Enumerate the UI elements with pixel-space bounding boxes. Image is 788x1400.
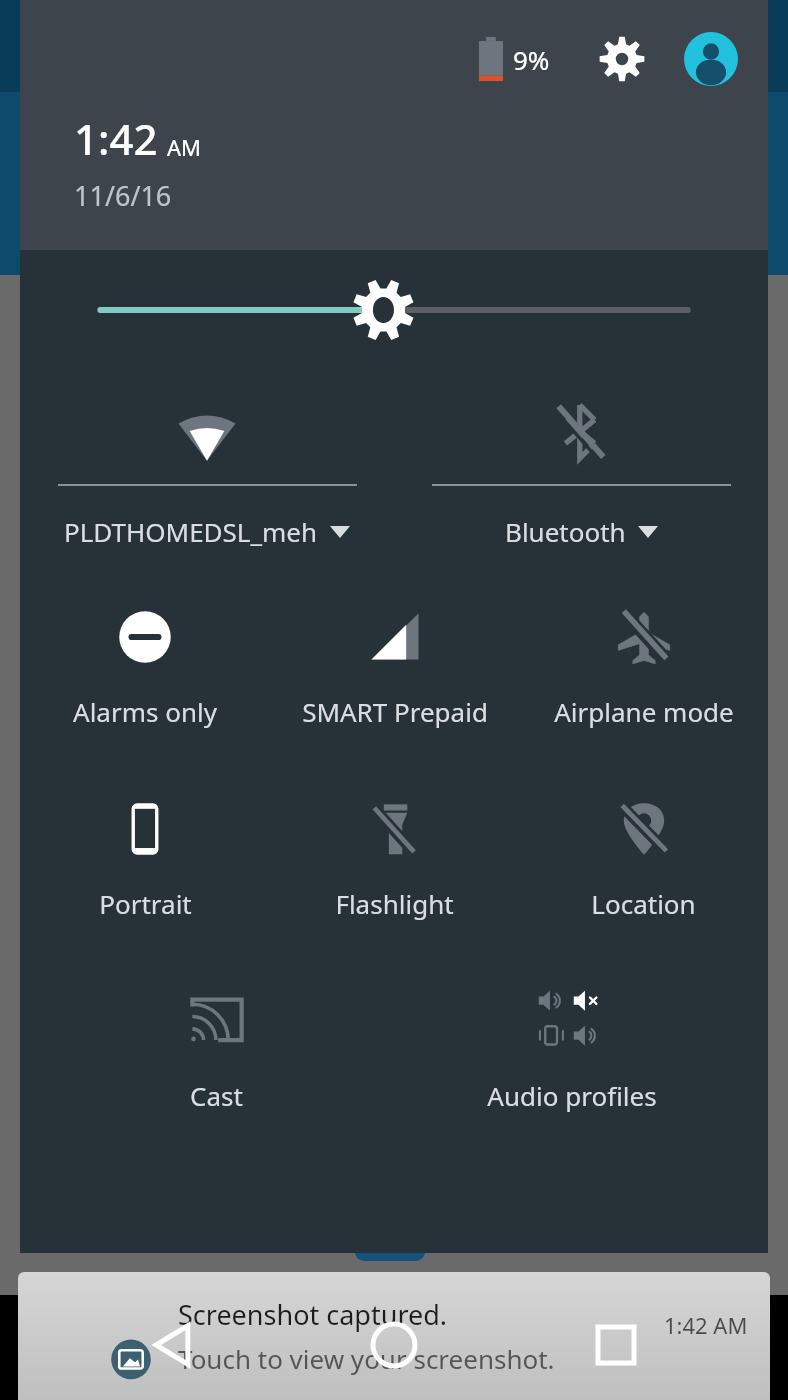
button[interactable]: SMART Prepaid	[270, 580, 519, 772]
staticText: Audio profiles	[487, 1078, 657, 1113]
button[interactable]: Settings	[594, 31, 650, 87]
staticText: AM	[167, 132, 202, 162]
staticText: PLDTHOMEDSL_meh	[64, 514, 318, 549]
button[interactable]: Alarms only	[20, 580, 270, 772]
button[interactable]: Location	[519, 772, 768, 964]
staticText: Location	[591, 886, 696, 921]
button[interactable]: Airplane mode	[519, 580, 768, 772]
staticText: 11/6/16	[74, 177, 172, 214]
button[interactable]: Brightness	[20, 250, 768, 370]
staticText: Touch to view your screenshot.	[178, 1341, 555, 1376]
button[interactable]: Bluetooth	[394, 370, 768, 580]
staticText: 1:42 AM	[664, 1310, 748, 1340]
staticText: Flashlight	[335, 886, 454, 921]
staticText: 1:42	[74, 110, 158, 167]
staticText: Portrait	[99, 886, 192, 921]
button[interactable]: Flashlight	[270, 772, 519, 964]
staticText: Airplane mode	[554, 694, 734, 729]
button[interactable]: Screenshot captured.	[18, 1272, 770, 1400]
button[interactable]: Recent apps	[566, 1295, 666, 1395]
staticText: Alarms only	[73, 694, 217, 729]
button[interactable]: Audio profiles	[435, 964, 708, 1156]
button[interactable]: Cast	[80, 964, 353, 1156]
staticText: 9%	[513, 42, 550, 77]
button[interactable]: 9%	[473, 31, 556, 87]
button[interactable]: Wi-Fi	[20, 370, 394, 580]
staticText: Screenshot captured.	[178, 1296, 448, 1333]
button[interactable]: User profile	[682, 30, 740, 88]
staticText: SMART Prepaid	[302, 694, 488, 729]
button[interactable]: Back	[122, 1295, 222, 1395]
staticText: Cast	[190, 1078, 243, 1113]
button[interactable]: Portrait	[20, 772, 270, 964]
button[interactable]: Home	[344, 1295, 444, 1395]
staticText: Bluetooth	[505, 514, 626, 549]
